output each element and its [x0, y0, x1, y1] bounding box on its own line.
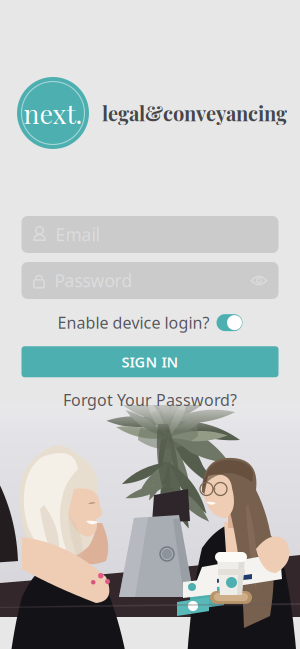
staticText: legal&conveyancing: [102, 100, 287, 126]
staticText: Password: [54, 269, 132, 292]
staticText: Email: [55, 223, 99, 246]
staticText: Enable device login?: [57, 312, 209, 333]
staticText: SIGN IN: [121, 352, 178, 371]
staticText: next.: [23, 95, 82, 131]
button[interactable]: SIGN IN: [21, 346, 278, 377]
button[interactable]: Show password: [250, 274, 267, 287]
staticText: Forgot Your Password?: [63, 389, 237, 410]
button[interactable]: Enable device login?: [57, 312, 242, 333]
button[interactable]: Forgot Your Password?: [63, 389, 237, 410]
